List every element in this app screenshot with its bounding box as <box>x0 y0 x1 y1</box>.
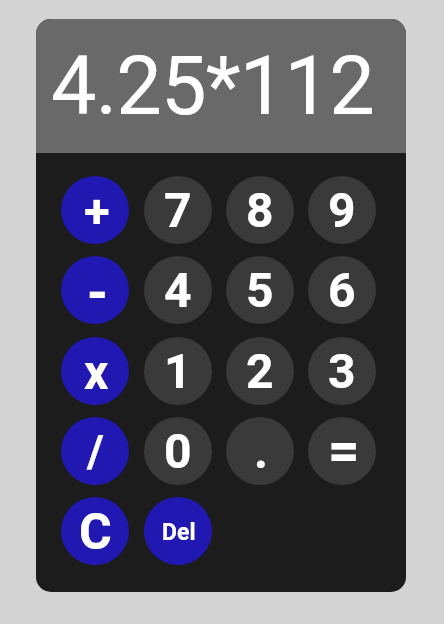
staticText: 5 <box>246 262 274 318</box>
button[interactable]: + <box>61 176 129 244</box>
button[interactable]: C <box>61 497 129 565</box>
staticText: . <box>254 423 268 479</box>
staticText: x <box>84 344 109 400</box>
button[interactable]: 7 <box>144 176 212 244</box>
staticText: 8 <box>246 182 274 238</box>
button[interactable]: . <box>226 417 294 485</box>
staticText: - <box>87 261 108 324</box>
staticText: 9 <box>328 182 356 238</box>
staticText: + <box>84 183 110 238</box>
button[interactable]: 9 <box>308 176 376 244</box>
button[interactable]: Del <box>144 497 212 565</box>
button[interactable]: 4 <box>144 256 212 324</box>
staticText: 1 <box>164 343 192 399</box>
staticText: 4 <box>164 262 192 318</box>
staticText: 2 <box>246 343 274 399</box>
staticText: C <box>79 503 112 562</box>
button[interactable]: - <box>61 256 129 324</box>
button[interactable]: / <box>61 417 129 485</box>
button[interactable]: 2 <box>226 337 294 405</box>
button[interactable]: 3 <box>308 337 376 405</box>
staticText: 3 <box>328 343 356 399</box>
button[interactable]: = <box>308 417 376 485</box>
button[interactable]: x <box>61 337 129 405</box>
button[interactable]: 1 <box>144 337 212 405</box>
staticText: Del <box>162 519 196 546</box>
staticText: 7 <box>164 182 192 238</box>
staticText: = <box>328 419 360 483</box>
staticText: 4.25*112 <box>51 39 374 134</box>
staticText: 0 <box>164 423 192 479</box>
staticText: 6 <box>328 262 356 318</box>
staticText: / <box>87 425 104 478</box>
button[interactable]: 5 <box>226 256 294 324</box>
button[interactable]: 6 <box>308 256 376 324</box>
button[interactable]: 8 <box>226 176 294 244</box>
button[interactable]: 0 <box>144 417 212 485</box>
